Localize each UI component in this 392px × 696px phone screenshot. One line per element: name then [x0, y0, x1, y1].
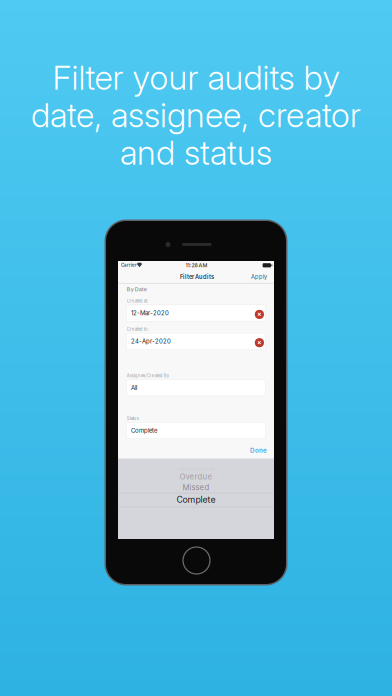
staticText: Missed — [182, 483, 209, 492]
staticText: and status — [120, 132, 272, 148]
staticText: Created at: — [127, 298, 148, 304]
staticText: Done — [250, 447, 267, 454]
staticText: Assignee/Created By — [127, 373, 169, 378]
staticText: Status — [127, 416, 139, 421]
button[interactable]: Apply — [0, 0, 392, 696]
staticText: Complete — [176, 494, 215, 505]
staticText: 24-Apr-2020 — [131, 338, 171, 345]
staticText: 12-Mar-2020 — [131, 309, 169, 317]
staticText: Carrier — [121, 262, 137, 268]
staticText: Filter your audits by — [52, 57, 339, 73]
button[interactable]: Done — [0, 0, 392, 696]
staticText: Filter Audits — [180, 273, 214, 280]
button[interactable]: Clear Created to: — [0, 0, 392, 696]
staticText: 11:28 AM — [185, 262, 207, 268]
staticText: Overdue — [179, 472, 212, 481]
staticText: All — [131, 384, 137, 391]
staticText: Created to: — [127, 327, 149, 332]
staticText: By Date — [127, 286, 147, 292]
staticText: date, assignee, creator — [31, 95, 361, 111]
button[interactable]: Clear Created at: — [0, 0, 392, 696]
staticText: Complete — [131, 427, 157, 434]
staticText: Apply — [251, 273, 267, 280]
